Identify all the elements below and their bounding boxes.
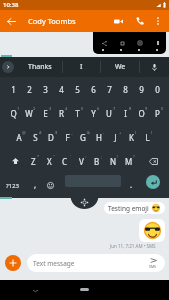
staticText: U [106,108,112,119]
button[interactable]: More [152,37,164,49]
button[interactable]: We [101,57,139,77]
button[interactable]: S [27,125,43,149]
staticText: Cody Toombs [28,16,76,26]
button[interactable]: X [41,149,57,173]
staticText: * [37,154,40,159]
button[interactable]: Add attachment [5,255,21,271]
button[interactable]: Text message [27,254,165,272]
button[interactable]: 2 [21,77,37,101]
button[interactable]: Y [85,101,101,125]
staticText: Jun 11, 7:21 AM • SMS [110,243,156,249]
button[interactable]: Emoji [43,173,58,198]
button[interactable]: E [37,101,53,125]
button[interactable]: Testing emoji [104,202,165,214]
button[interactable]: K [123,125,139,149]
staticText: M [125,156,133,167]
button[interactable]: C [57,149,73,173]
button[interactable]: 5 [69,77,85,101]
staticText: G [80,132,86,143]
button[interactable]: Home [80,288,89,291]
button[interactable]: Call [132,13,148,29]
button[interactable]: Backspace [143,149,163,173]
staticText: 2 [33,106,36,111]
button[interactable]: 4 [53,77,69,101]
staticText: Q [10,108,17,119]
staticText: ( [135,130,137,135]
button[interactable]: Q [5,101,21,125]
button[interactable]: Hide keyboard [29,285,41,297]
button[interactable]: O [133,101,149,125]
staticText: " [53,154,55,159]
button[interactable]: W [21,101,37,125]
staticText: @ [22,130,26,135]
button[interactable] [139,219,165,242]
staticText: 8 [129,106,132,111]
button[interactable]: ?123 [2,173,23,198]
button[interactable]: Share [98,37,110,49]
button[interactable]: G [75,125,91,149]
staticText: Text message [33,259,75,268]
button[interactable]: Thanks [18,57,62,77]
button[interactable]: Voice input [145,58,163,76]
staticText: A [16,132,22,143]
button[interactable]: B [89,149,105,173]
staticText: 9 [139,84,144,95]
staticText: We [115,62,126,72]
staticText: . [130,179,133,190]
button[interactable]: I [117,101,133,125]
button[interactable]: Enter [146,175,160,189]
staticText: S [33,132,38,143]
button[interactable]: N [105,149,121,173]
button[interactable]: I [63,57,100,77]
button[interactable]: More suggestions [2,61,14,73]
staticText: H [96,132,102,143]
staticText: Testing emoji [108,204,149,213]
button[interactable]: Shift [5,149,25,173]
button[interactable]: , [28,173,43,198]
button[interactable]: Move keyboard [62,190,107,212]
staticText: 1 [17,106,20,111]
button[interactable]: Video call [110,13,126,29]
button[interactable]: Z [25,149,41,173]
button[interactable]: Navigate up [3,13,19,29]
button[interactable]: P [149,101,165,125]
staticText: 5 [75,84,80,95]
button[interactable]: L [139,125,155,149]
button[interactable]: D [43,125,59,149]
button[interactable]: H [91,125,107,149]
button[interactable]: 0 [149,77,165,101]
staticText: 8 [123,84,128,95]
button[interactable]: U [101,101,117,125]
staticText: 3 [49,106,52,111]
button[interactable]: V [73,149,89,173]
staticText: ' [70,154,71,159]
button[interactable]: A [11,125,27,149]
staticText: + [119,130,122,135]
button[interactable]: More options [150,13,166,29]
button[interactable]: 7 [101,77,117,101]
staticText: ? [133,154,135,159]
staticText: I [80,62,83,72]
staticText: L [145,132,150,143]
staticText: ?123 [6,182,19,190]
button[interactable]: T [69,101,85,125]
button[interactable]: 9 [133,77,149,101]
button[interactable]: 3 [37,77,53,101]
button[interactable]: J [107,125,123,149]
staticText: 0 [161,106,164,111]
button[interactable]: 6 [85,77,101,101]
staticText: 4 [65,106,68,111]
staticText: _ [71,130,73,135]
button[interactable]: R [53,101,69,125]
button[interactable]: Copy [116,37,128,49]
button[interactable]: Send SMS [145,255,161,271]
staticText: 5 [81,106,84,111]
button[interactable]: Select all [134,37,146,49]
button[interactable]: M [121,149,137,173]
button[interactable]: 8 [117,77,133,101]
button[interactable]: . [124,173,138,198]
button[interactable]: F [59,125,75,149]
staticText: B [94,156,100,167]
button[interactable]: 1 [5,77,21,101]
